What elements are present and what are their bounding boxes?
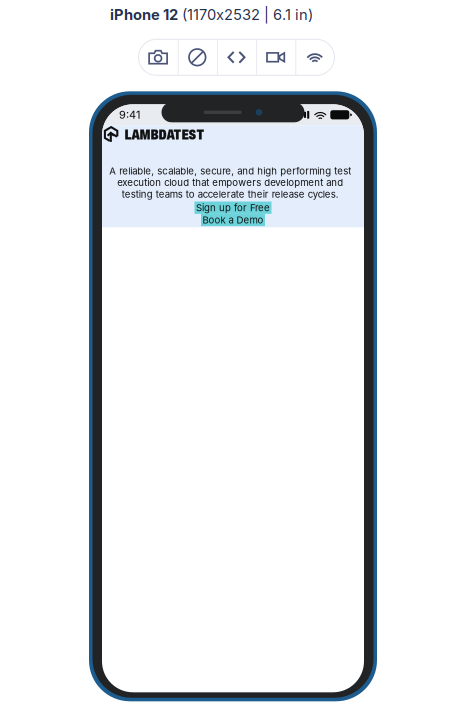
staticText: A reliable, scalable, secure, and high p… <box>109 165 351 200</box>
button[interactable]: Rotate device <box>178 39 217 75</box>
staticText: Book a Demo <box>202 214 263 226</box>
staticText: Sign up for Free <box>196 202 270 213</box>
button[interactable]: Network throttling <box>295 39 334 75</box>
button[interactable]: Record video <box>256 39 295 75</box>
button[interactable]: Book a Demo <box>201 214 265 226</box>
button[interactable]: Inspect code <box>217 39 256 75</box>
button[interactable]: Sign up for Free <box>194 202 271 214</box>
staticText: iPhone 12 (1170x2532 | 6.1 in) <box>110 6 313 23</box>
button[interactable]: Screenshot <box>138 39 178 75</box>
staticText: 9:41 <box>119 108 140 121</box>
staticText: LAMBDATEST <box>124 126 204 143</box>
